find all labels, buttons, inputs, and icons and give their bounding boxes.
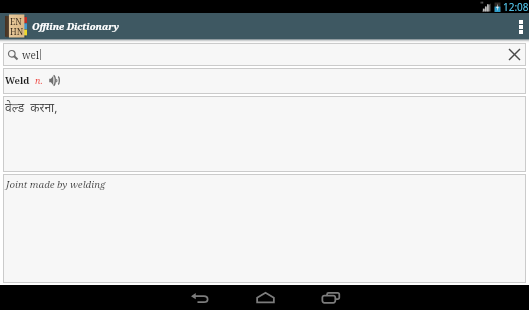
staticText: 12:08 — [503, 0, 529, 13]
button[interactable]: More options — [514, 13, 528, 39]
staticText: Joint made by welding — [6, 178, 106, 191]
button[interactable]: wel — [4, 44, 525, 65]
staticText: EN — [10, 16, 22, 28]
staticText: HN — [10, 26, 24, 38]
button[interactable]: Home — [242, 285, 288, 310]
button[interactable]: Recent apps — [308, 285, 354, 310]
staticText: n. — [35, 74, 43, 86]
button[interactable]: Pronounce — [48, 74, 61, 87]
staticText: वेल्ड करना, — [5, 99, 58, 115]
button[interactable]: Back — [176, 285, 222, 310]
staticText: Weld — [5, 74, 30, 87]
staticText: Offline Dictionary — [32, 20, 120, 33]
button[interactable]: Clear search — [504, 44, 525, 65]
staticText: wel — [22, 48, 40, 62]
